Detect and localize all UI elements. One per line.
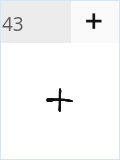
- button[interactable]: Add page: [71, 1, 119, 43]
- button[interactable]: 43: [1, 1, 71, 43]
- staticText: 43: [2, 11, 24, 37]
